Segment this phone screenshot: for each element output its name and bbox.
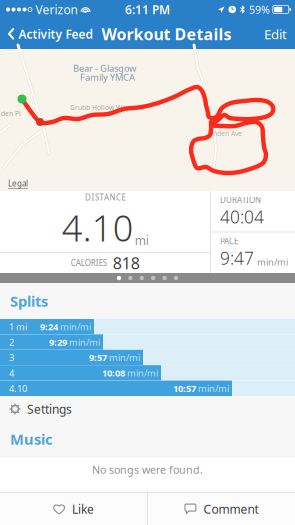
- staticText: Music: [10, 429, 53, 449]
- staticText: 4.10: [62, 204, 134, 251]
- staticText: Bear - Glasgow: [73, 62, 136, 74]
- button[interactable]: Edit: [256, 19, 295, 49]
- staticText: 59%: [249, 2, 270, 17]
- staticText: 9:57: [89, 351, 107, 364]
- staticText: 10:08: [102, 367, 125, 379]
- staticText: min/mi: [67, 336, 100, 348]
- staticText: Settings: [27, 401, 72, 417]
- staticText: 4.10: [9, 382, 27, 394]
- staticText: 10:57: [173, 382, 196, 394]
- staticText: Verizon: [35, 1, 77, 17]
- staticText: 818: [113, 252, 140, 274]
- staticText: 9:24: [40, 320, 58, 333]
- staticText: 9:29: [49, 336, 67, 348]
- staticText: 2: [9, 336, 14, 348]
- staticText: 4: [9, 367, 14, 379]
- staticText: 40:04: [220, 205, 264, 228]
- staticText: PACE: [220, 236, 238, 246]
- staticText: No songs were found.: [92, 462, 203, 477]
- staticText: DURATION: [220, 194, 261, 205]
- staticText: Linden Ave: [208, 129, 242, 138]
- staticText: min/mi: [257, 256, 288, 268]
- staticText: Legal: [8, 178, 28, 189]
- button[interactable]: Comment: [148, 493, 295, 525]
- staticText: Like: [72, 501, 94, 517]
- staticText: 6:11 PM: [125, 1, 170, 17]
- button[interactable]: Like: [0, 493, 147, 525]
- staticText: den Pl: [1, 109, 21, 118]
- staticText: Workout Details: [101, 23, 231, 45]
- staticText: min/mi: [125, 367, 158, 379]
- staticText: min/mi: [196, 382, 229, 394]
- staticText: 1 mi: [9, 320, 27, 333]
- staticText: min/mi: [58, 320, 91, 333]
- button[interactable]: Activity Feed: [0, 19, 97, 49]
- staticText: Edit: [264, 25, 287, 43]
- staticText: Comment: [203, 501, 258, 517]
- staticText: Activity Feed: [18, 26, 93, 42]
- staticText: Grubb Hollow Way: [70, 103, 129, 112]
- button[interactable]: Settings: [0, 396, 295, 422]
- staticText: min/mi: [107, 351, 140, 364]
- staticText: mi: [135, 232, 149, 248]
- staticText: 3: [9, 351, 14, 364]
- staticText: CALORIES: [71, 258, 107, 268]
- staticText: Family YMCA: [80, 71, 135, 83]
- staticText: DISTANCE: [85, 192, 125, 203]
- staticText: 9:47: [220, 246, 254, 269]
- staticText: Splits: [10, 291, 48, 311]
